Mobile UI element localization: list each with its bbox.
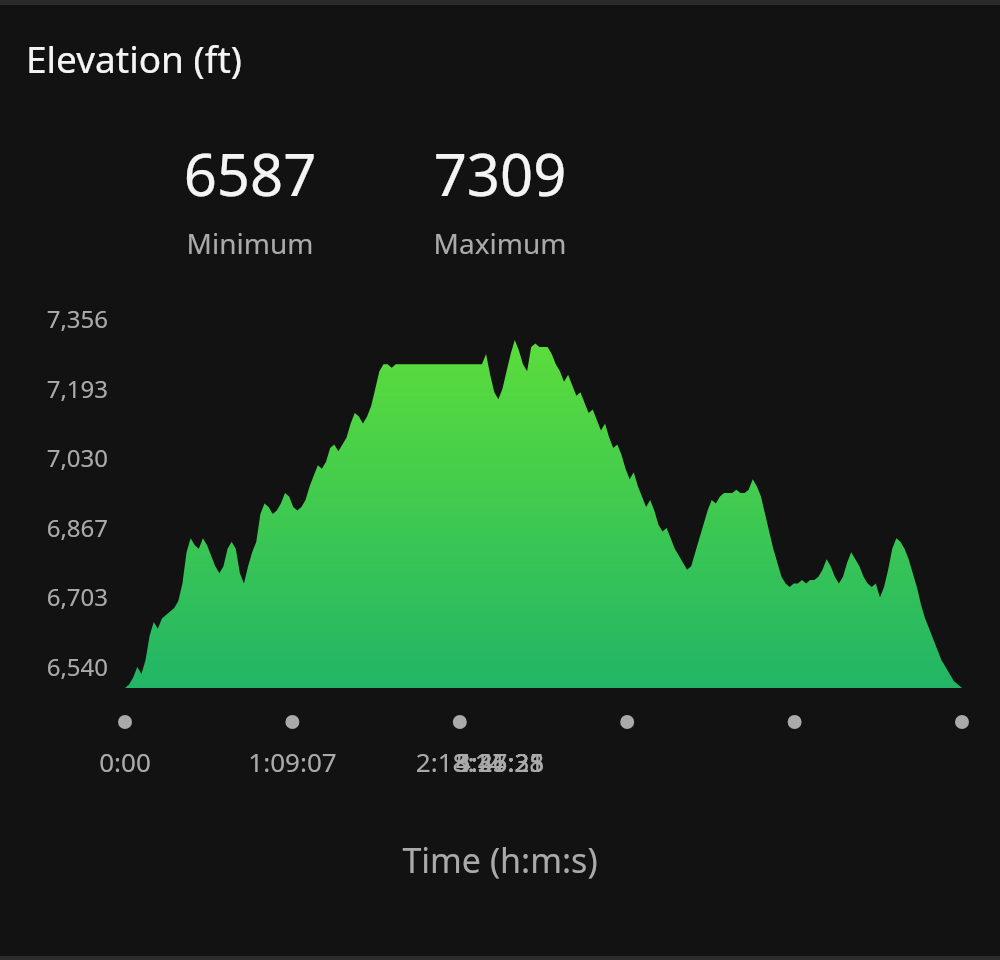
staticText: 2:18:14 — [0, 744, 920, 779]
button[interactable]: Elevation (ft) — [26, 33, 242, 83]
staticText: 5:45:35 — [0, 744, 1000, 779]
staticText: Time (h:m:s) — [0, 837, 1000, 883]
staticText: 7,193 — [0, 372, 108, 405]
staticText: Maximum — [0, 224, 1000, 262]
staticText: 6,867 — [0, 511, 108, 544]
staticText: 7,030 — [0, 441, 108, 474]
staticText: 6587 — [0, 134, 500, 213]
button[interactable]: Elevation chart — [0, 0, 1000, 960]
staticText: 7309 — [0, 134, 1000, 213]
staticText: 4:36:28 — [0, 744, 1000, 779]
staticText: 6,540 — [0, 650, 108, 683]
staticText: 0:00 — [0, 744, 250, 779]
staticText: 3:27:21 — [0, 744, 1000, 779]
staticText: 6,703 — [0, 580, 108, 613]
staticText: 7,356 — [0, 302, 108, 335]
staticText: 1:09:07 — [0, 744, 585, 779]
staticText: Minimum — [0, 224, 500, 262]
